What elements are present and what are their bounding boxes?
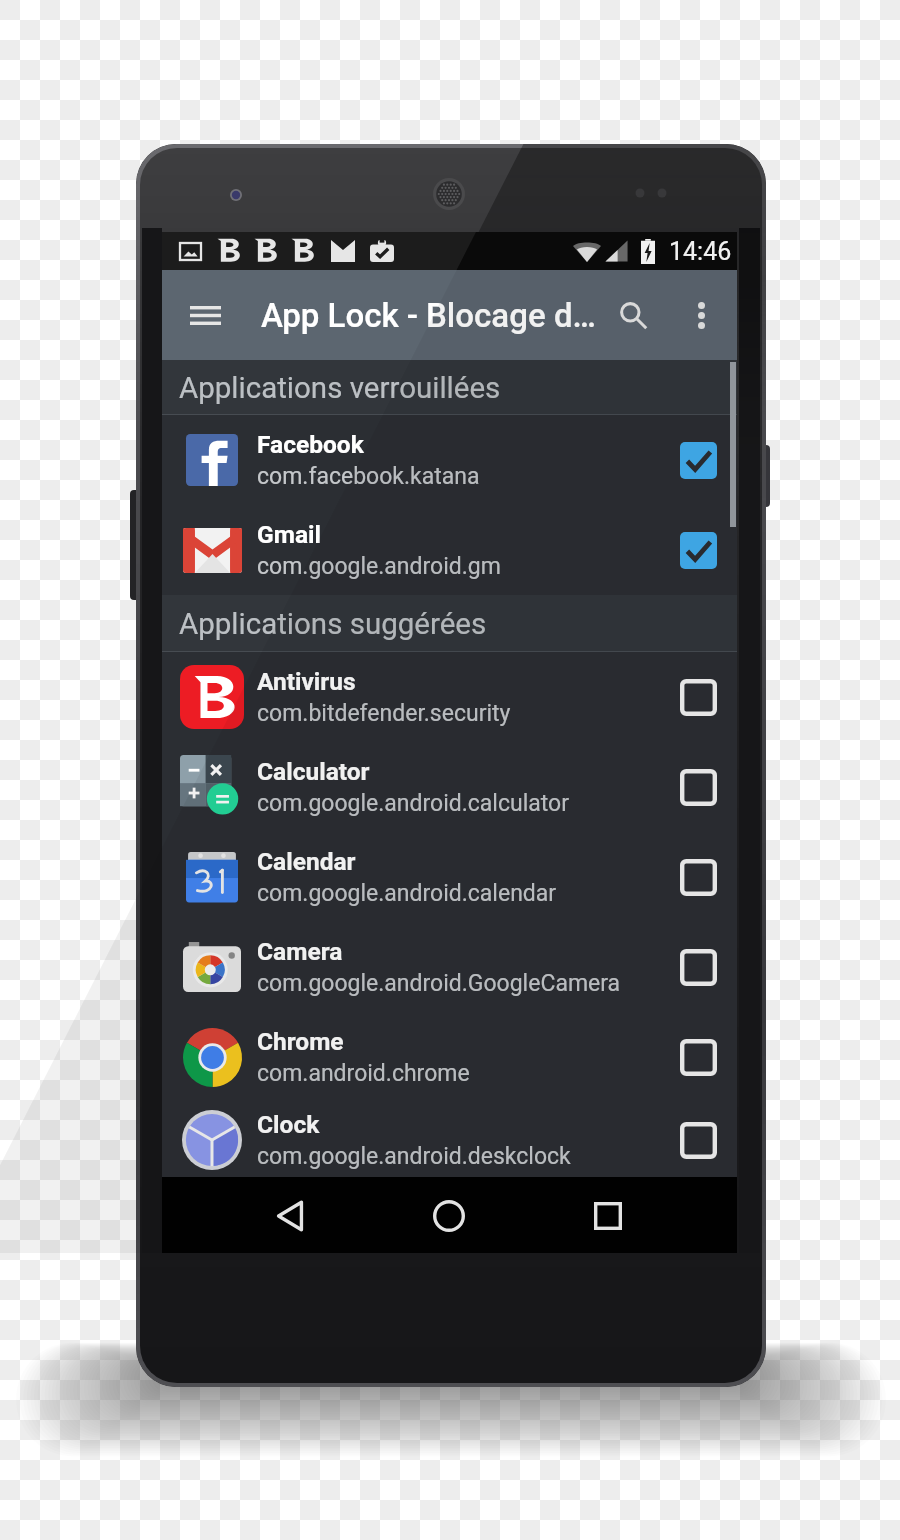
staticText: Applications verrouillées [179,371,501,406]
button[interactable]: Home [415,1182,483,1250]
button[interactable]: Calendar [162,832,737,922]
staticText: Antivirus [257,667,356,696]
staticText: 14:46 [669,237,732,266]
staticText: Applications suggérées [179,607,487,642]
staticText: Chrome [257,1027,344,1056]
staticText: com.google.android.gm [257,553,501,580]
button[interactable]: Antivirus [162,652,737,742]
button[interactable]: Chrome [162,1012,737,1102]
button[interactable]: Lock Clock [670,1112,726,1168]
button[interactable]: Back [256,1182,324,1250]
button[interactable]: Navigation menu [176,270,234,360]
staticText: App Lock - Blocage d… [261,296,596,335]
staticText: com.android.chrome [257,1060,470,1087]
staticText: com.bitdefender.security [257,700,511,727]
button[interactable]: Lock Calendar [670,849,726,905]
button[interactable]: Clock [162,1102,737,1177]
staticText: com.google.android.deskclock [257,1143,571,1170]
button[interactable]: Lock Calculator [670,759,726,815]
staticText: com.facebook.katana [257,463,480,490]
button[interactable]: Lock Gmail [670,522,726,578]
staticText: Camera [257,937,343,966]
staticText: com.google.android.calculator [257,790,569,817]
button[interactable]: Lock Chrome [670,1029,726,1085]
staticText: Clock [257,1110,320,1139]
staticText: com.google.android.calendar [257,880,557,907]
button[interactable]: More options [678,270,724,360]
button[interactable]: Lock Facebook [670,432,726,488]
button[interactable]: Gmail [162,505,737,595]
button[interactable]: Facebook [162,415,737,505]
button[interactable]: Camera [162,922,737,1012]
staticText: Calendar [257,847,356,876]
button[interactable]: Calculator [162,742,737,832]
staticText: Facebook [257,430,364,459]
button[interactable]: Lock Camera [670,939,726,995]
staticText: com.google.android.GoogleCamera [257,970,621,997]
button[interactable]: Recent apps [574,1182,642,1250]
button[interactable]: Lock Antivirus [670,669,726,725]
staticText: Gmail [257,520,322,549]
button[interactable]: Search [606,270,660,360]
staticText: Calculator [257,757,370,786]
